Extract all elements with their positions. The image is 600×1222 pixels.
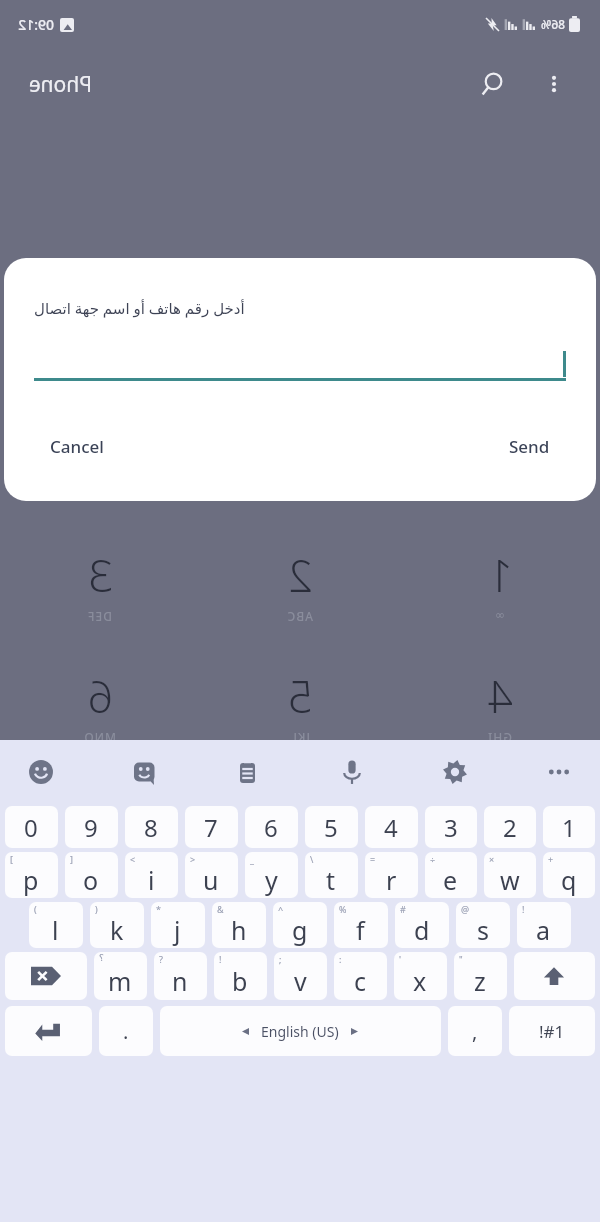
staticText: e	[443, 863, 458, 897]
staticText: :	[339, 953, 342, 965]
button[interactable]: ÷	[425, 852, 477, 898]
staticText: o	[83, 863, 99, 897]
staticText: ÷	[430, 853, 436, 865]
button[interactable]: ؟	[94, 952, 147, 1000]
button[interactable]: *	[151, 902, 205, 948]
button[interactable]: Shift	[514, 952, 595, 1000]
staticText: c	[354, 964, 367, 998]
staticText: )	[95, 903, 98, 915]
staticText: ؟	[99, 953, 104, 963]
button[interactable]: 6	[245, 806, 298, 848]
button[interactable]: Search	[468, 60, 516, 108]
staticText: !#1	[539, 1020, 565, 1043]
staticText: \	[310, 853, 314, 865]
staticText: ^	[278, 903, 284, 915]
button[interactable]: Emoji	[18, 749, 64, 795]
button[interactable]: ×	[484, 852, 536, 898]
staticText: *	[156, 903, 161, 915]
button[interactable]: (	[29, 902, 83, 948]
button[interactable]: 5	[305, 806, 358, 848]
button[interactable]: ?	[154, 952, 207, 1000]
button[interactable]: ;	[274, 952, 327, 1000]
staticText: .	[123, 1018, 129, 1045]
button[interactable]: )	[90, 902, 144, 948]
staticText: f	[356, 913, 365, 947]
staticText: s	[477, 913, 489, 947]
button[interactable]: Backspace	[5, 952, 87, 1000]
button[interactable]: :	[334, 952, 387, 1000]
button[interactable]: 9	[65, 806, 118, 848]
button[interactable]: 2	[200, 545, 400, 624]
button[interactable]: Cancel	[34, 427, 120, 466]
button[interactable]: <	[125, 852, 178, 898]
button[interactable]: 0	[5, 806, 58, 848]
button[interactable]: >	[185, 852, 238, 898]
button[interactable]: #	[395, 902, 449, 948]
staticText: [	[10, 853, 13, 865]
button[interactable]: !#1	[509, 1006, 595, 1056]
staticText: x	[413, 964, 427, 998]
staticText: ?	[159, 953, 163, 965]
staticText: q	[561, 863, 577, 897]
staticText: 2	[503, 811, 517, 844]
staticText: &	[217, 903, 224, 915]
button[interactable]: _	[245, 852, 298, 898]
staticText: Phone	[28, 70, 92, 99]
button[interactable]: !	[214, 952, 267, 1000]
button[interactable]: Clipboard	[225, 749, 271, 795]
button[interactable]: 1	[400, 545, 600, 622]
button[interactable]: Settings	[432, 749, 478, 795]
staticText: z	[474, 964, 486, 998]
staticText: a	[536, 913, 551, 947]
button[interactable]: 1	[543, 806, 595, 848]
button[interactable]: Stickers	[122, 749, 168, 795]
button[interactable]: 3	[425, 806, 477, 848]
button[interactable]: More options	[532, 62, 576, 106]
button[interactable]: Voice input	[329, 749, 375, 795]
staticText: 2	[287, 545, 313, 605]
button[interactable]: &	[212, 902, 266, 948]
staticText: %	[339, 903, 347, 915]
button[interactable]: ]	[65, 852, 118, 898]
staticText: ∞	[494, 608, 505, 622]
button[interactable]: "	[454, 952, 507, 1000]
staticText: !	[522, 903, 525, 915]
button[interactable]: Enter	[5, 1006, 92, 1056]
button[interactable]: +	[543, 852, 595, 898]
button[interactable]: @	[456, 902, 510, 948]
staticText: +	[548, 853, 554, 865]
staticText: 6	[264, 811, 278, 844]
staticText: l	[52, 913, 59, 947]
staticText: u	[203, 863, 219, 897]
staticText: r	[386, 863, 397, 897]
staticText: 5	[324, 811, 338, 844]
button[interactable]: 8	[125, 806, 178, 848]
button[interactable]: 4	[365, 806, 418, 848]
button[interactable]: =	[365, 852, 418, 898]
button[interactable]: \	[305, 852, 358, 898]
button[interactable]: 6	[0, 666, 200, 745]
button[interactable]: .	[99, 1006, 153, 1056]
staticText: i	[148, 863, 155, 897]
button[interactable]: ,	[448, 1006, 502, 1056]
button[interactable]: 2	[484, 806, 536, 848]
staticText: p	[23, 863, 39, 897]
button[interactable]: 5	[200, 666, 400, 745]
button[interactable]: 3	[0, 545, 200, 624]
staticText: ABC	[286, 608, 313, 624]
button[interactable]: 7	[185, 806, 238, 848]
staticText: v	[294, 964, 307, 998]
button[interactable]: %	[334, 902, 388, 948]
button[interactable]: '	[394, 952, 447, 1000]
button[interactable]: More	[536, 749, 582, 795]
staticText: 4	[487, 666, 513, 726]
staticText: _	[250, 853, 254, 865]
button[interactable]: Send	[493, 427, 566, 466]
staticText: n	[172, 964, 188, 998]
staticText: b	[232, 964, 248, 998]
button[interactable]: 4	[400, 666, 600, 745]
button[interactable]: Space, English (US)	[160, 1006, 441, 1056]
button[interactable]: !	[517, 902, 571, 948]
button[interactable]: ^	[273, 902, 327, 948]
button[interactable]: [	[5, 852, 58, 898]
